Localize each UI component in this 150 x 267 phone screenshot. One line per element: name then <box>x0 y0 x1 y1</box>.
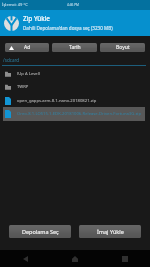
button[interactable]: open_gapps-arm-8.1-nano-20180821.zip <box>3 94 145 108</box>
staticText: 4:46 PM <box>67 3 79 7</box>
staticText: TWRP <box>17 84 145 90</box>
button[interactable]: Depolama Seç <box>9 225 71 238</box>
staticText: Oreo-8.1-LOS15.1-EDK-20181006-Release-Dr… <box>17 111 145 117</box>
button[interactable]: Boyut <box>100 43 145 52</box>
staticText: Ad <box>24 44 31 51</box>
button[interactable]: Recents <box>100 250 150 267</box>
staticText: Zip Yükle <box>23 14 50 23</box>
staticText: İmaj Yükle <box>97 228 124 235</box>
button[interactable]: Tarih <box>52 43 97 52</box>
button[interactable]: Oreo-8.1-LOS15.1-EDK-20181006-Release-Dr… <box>3 107 145 121</box>
staticText: Tarih <box>69 44 81 51</box>
button[interactable]: Ad <box>5 43 49 52</box>
button[interactable]: TWRP <box>3 80 145 94</box>
staticText: (Up A Level) <box>17 71 145 77</box>
button[interactable]: (Up A Level) <box>3 67 145 81</box>
staticText: Dahili Depolama'dan dosya seç (3230 MB) <box>23 25 113 31</box>
staticText: Depolama Seç <box>22 228 59 235</box>
button[interactable]: Back <box>0 250 50 267</box>
button[interactable]: İmaj Yükle <box>79 225 141 238</box>
staticText: Boyut <box>116 44 130 51</box>
staticText: İşlemci: 49 °C <box>2 2 28 8</box>
staticText: /sdcard <box>3 57 20 63</box>
button[interactable]: Home <box>50 250 100 267</box>
button[interactable]: Zip Yükle <box>0 10 150 36</box>
staticText: open_gapps-arm-8.1-nano-20180821.zip <box>17 98 145 104</box>
